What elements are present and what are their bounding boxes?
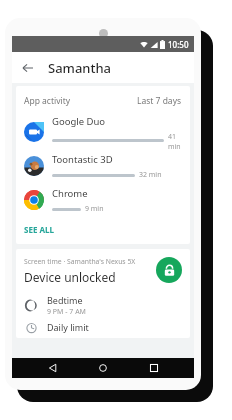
staticText: 10:50 [168, 39, 189, 50]
button[interactable]: SEE ALL [16, 217, 190, 244]
staticText: 32 min [139, 170, 162, 180]
button[interactable]: Google Duo [16, 115, 190, 149]
staticText: Daily limit [47, 321, 89, 333]
button[interactable]: Back [18, 58, 38, 78]
staticText: Bedtime [47, 294, 83, 306]
staticText: Screen time · Samantha's Nexus 5X [24, 257, 136, 266]
button[interactable]: Recents [144, 358, 164, 378]
button[interactable]: Daily limit [16, 316, 190, 338]
staticText: Samantha [48, 59, 112, 77]
button[interactable]: Bedtime [16, 294, 190, 316]
staticText: 41 min [168, 132, 182, 149]
staticText: Last 7 days [137, 95, 182, 107]
staticText: Chrome [52, 187, 88, 200]
button[interactable]: Home [93, 358, 113, 378]
staticText: 9 min [85, 204, 104, 214]
button[interactable]: Lock device [156, 257, 182, 283]
staticText: Device unlocked [24, 269, 116, 285]
staticText: App activity [24, 95, 71, 107]
button[interactable]: Back [43, 358, 63, 378]
staticText: SEE ALL [24, 224, 54, 235]
button[interactable]: Chrome [16, 183, 190, 217]
staticText: 9 PM - 7 AM [47, 307, 86, 316]
staticText: Google Duo [52, 115, 106, 128]
staticText: Toontastic 3D [52, 153, 113, 166]
button[interactable]: Toontastic 3D [16, 149, 190, 183]
